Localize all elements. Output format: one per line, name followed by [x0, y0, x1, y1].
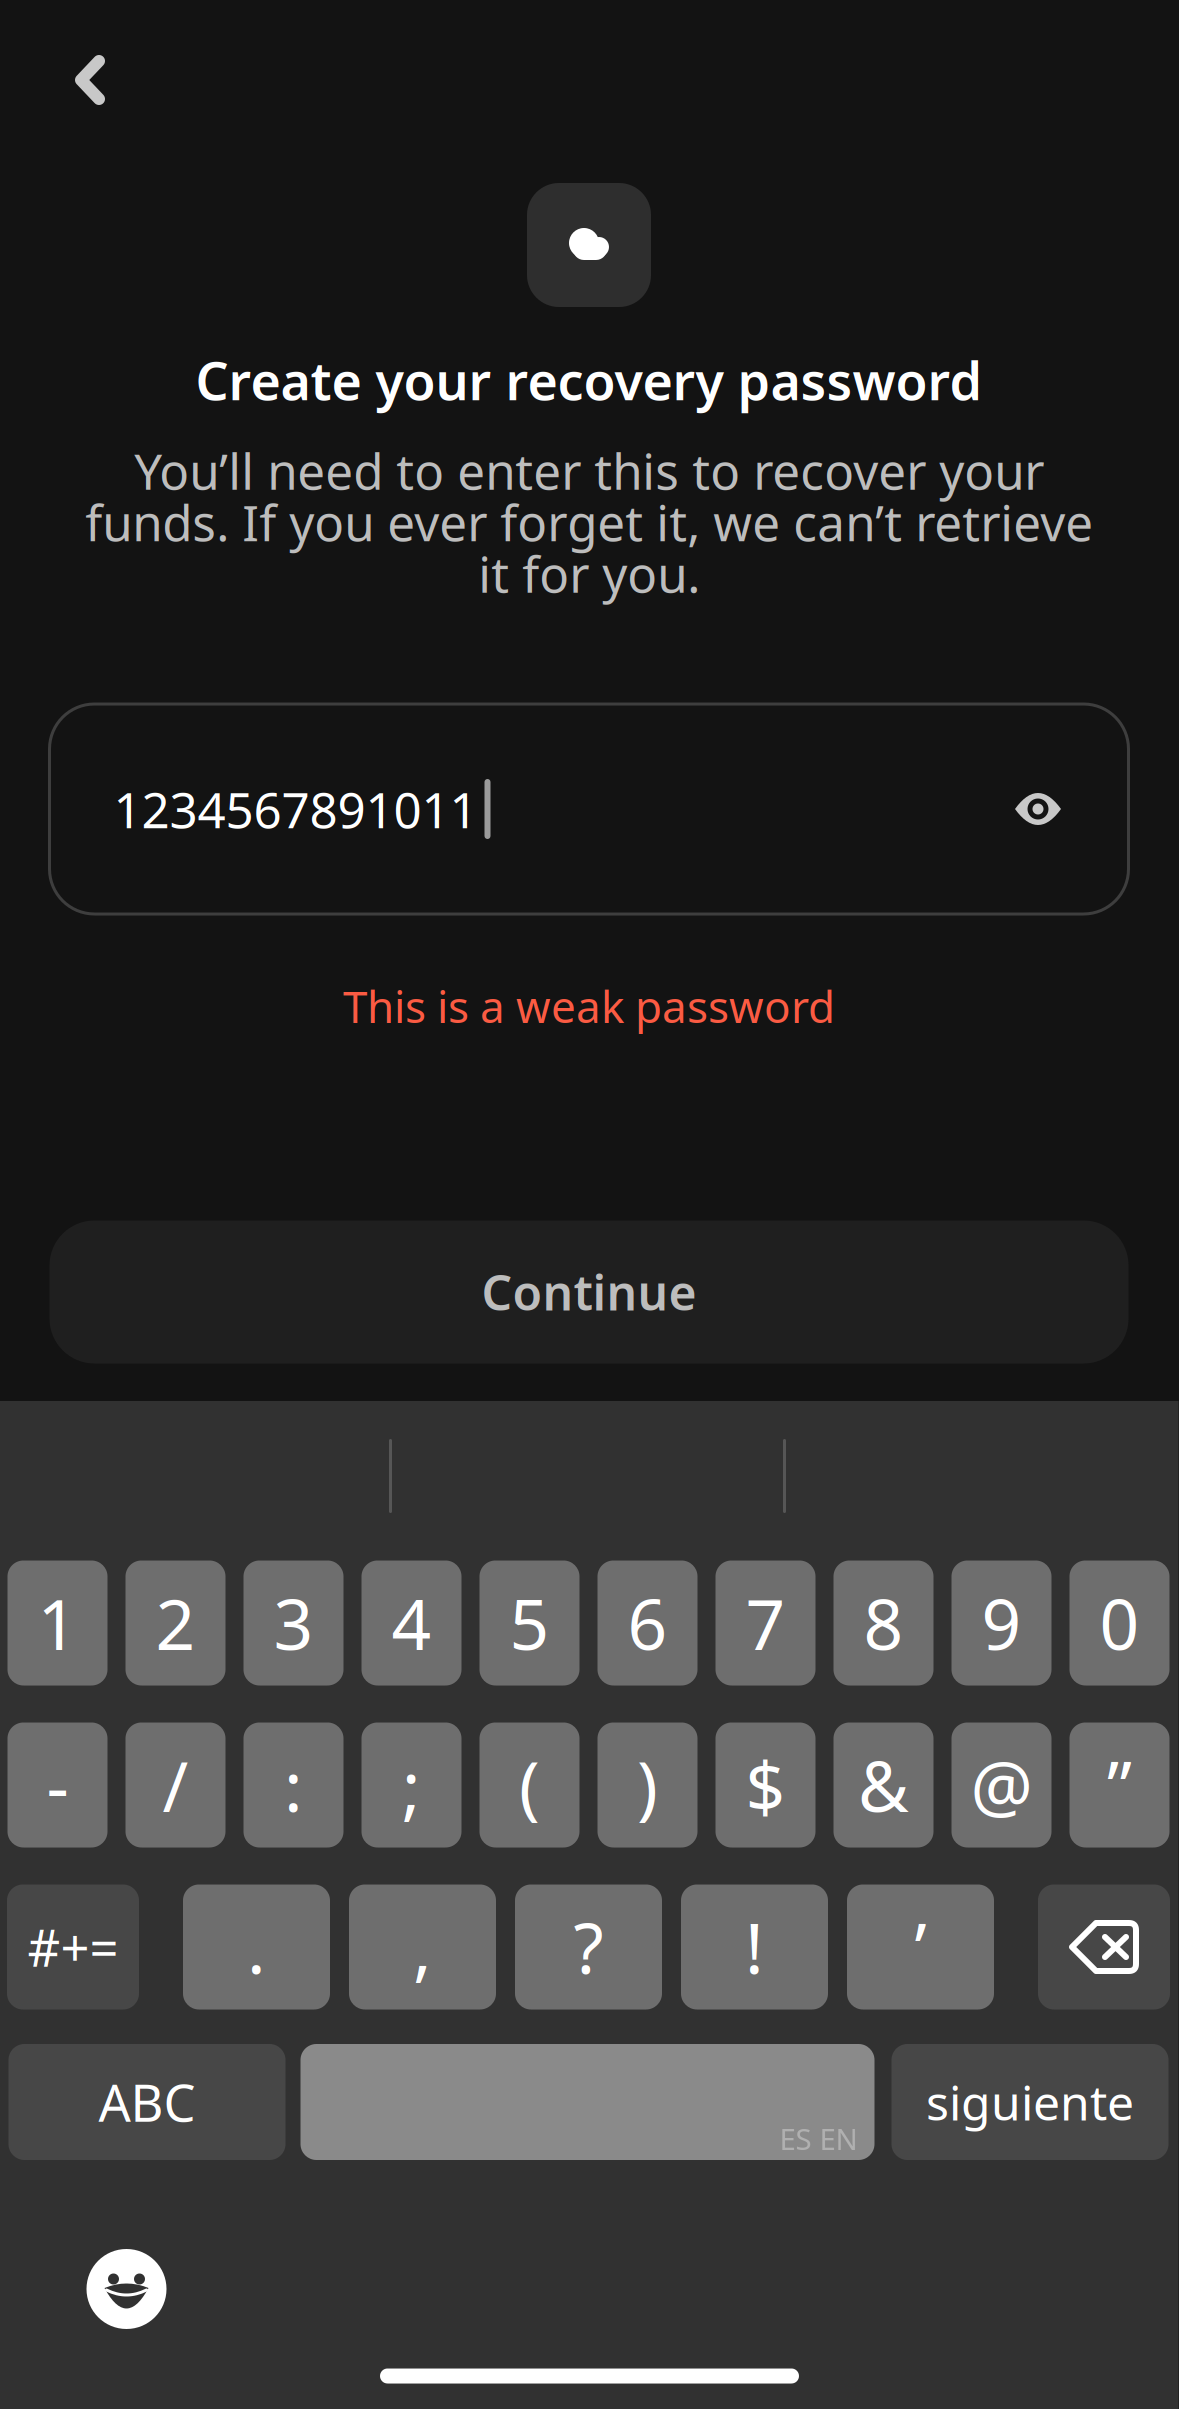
button[interactable]: 8 — [833, 1560, 933, 1685]
staticText: You’ll need to enter this to recover you… — [85, 438, 1093, 606]
button[interactable]: , — [349, 1884, 496, 2009]
button[interactable]: . — [183, 1884, 330, 2009]
button[interactable]: ; — [361, 1722, 461, 1847]
staticText: 9 — [981, 1577, 1021, 1669]
button[interactable]: 3 — [243, 1560, 343, 1685]
staticText: $ — [745, 1739, 785, 1831]
button[interactable]: ) — [597, 1722, 697, 1847]
staticText: . — [247, 1901, 266, 1993]
staticText: ABC — [98, 2068, 195, 2136]
staticText: ? — [573, 1901, 603, 1993]
button[interactable]: ’ — [847, 1884, 994, 2009]
staticText: #+= — [27, 1913, 118, 1981]
staticText: 0 — [1099, 1577, 1139, 1669]
button[interactable]: 0 — [1069, 1560, 1169, 1685]
staticText: : — [284, 1739, 303, 1831]
button[interactable]: ! — [681, 1884, 828, 2009]
button[interactable]: Back — [35, 25, 145, 135]
staticText: 2 — [155, 1577, 195, 1669]
staticText: Continue — [481, 1260, 696, 1324]
staticText: , — [413, 1901, 432, 1993]
staticText: ) — [637, 1739, 658, 1831]
button[interactable]: 9 — [951, 1560, 1051, 1685]
button[interactable]: - — [7, 1722, 107, 1847]
button[interactable]: Continue — [49, 1220, 1128, 1363]
staticText: & — [858, 1739, 909, 1831]
button[interactable]: 4 — [361, 1560, 461, 1685]
button[interactable]: ABC — [8, 2044, 285, 2160]
button[interactable]: 5 — [479, 1560, 579, 1685]
staticText: ; — [402, 1739, 421, 1831]
button[interactable]: ( — [479, 1722, 579, 1847]
staticText: This is a weak password — [343, 977, 835, 1035]
button[interactable]: 7 — [715, 1560, 815, 1685]
staticText: Create your recovery password — [195, 345, 982, 415]
staticText: ( — [519, 1739, 540, 1831]
staticText: siguiente — [926, 2070, 1134, 2134]
button[interactable]: siguiente — [891, 2044, 1168, 2160]
staticText: 4 — [391, 1577, 431, 1669]
button[interactable]: Show password — [1015, 791, 1061, 827]
button[interactable]: Space — [300, 2044, 874, 2160]
button[interactable]: Emoji keyboard — [86, 2249, 166, 2329]
button[interactable]: @ — [951, 1722, 1051, 1847]
button[interactable]: #+= — [7, 1884, 139, 2009]
staticText: @ — [970, 1739, 1032, 1831]
button[interactable]: ” — [1069, 1722, 1169, 1847]
staticText: 7 — [745, 1577, 785, 1669]
button[interactable]: $ — [715, 1722, 815, 1847]
button[interactable]: 6 — [597, 1560, 697, 1685]
staticText: 1 — [37, 1577, 77, 1669]
button[interactable]: : — [243, 1722, 343, 1847]
staticText: 6 — [627, 1577, 667, 1669]
staticText: ” — [1107, 1739, 1132, 1831]
staticText: / — [162, 1739, 188, 1831]
button[interactable]: ? — [515, 1884, 662, 2009]
staticText: ! — [745, 1901, 764, 1993]
button[interactable]: 1 — [7, 1560, 107, 1685]
staticText: 3 — [273, 1577, 313, 1669]
button[interactable]: Delete — [1038, 1884, 1170, 2009]
staticText: 8 — [863, 1577, 903, 1669]
button[interactable]: 2 — [125, 1560, 225, 1685]
staticText: - — [46, 1739, 68, 1831]
staticText: 1234567891011 — [113, 776, 477, 842]
staticText: ’ — [914, 1901, 926, 1993]
staticText: 5 — [509, 1577, 549, 1669]
button[interactable]: & — [833, 1722, 933, 1847]
staticText: ES EN — [779, 2119, 857, 2158]
button[interactable]: / — [125, 1722, 225, 1847]
